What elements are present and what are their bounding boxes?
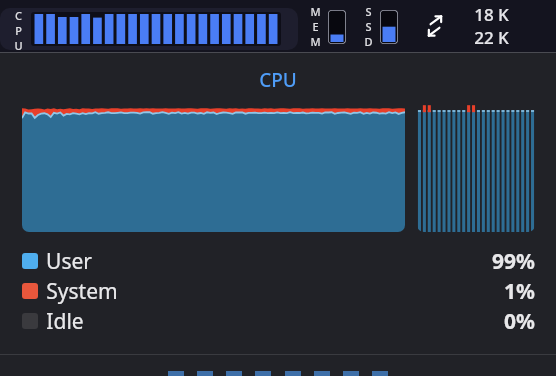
staticText: M — [310, 4, 321, 19]
staticText: 18 K — [474, 3, 509, 26]
button[interactable]: Idle — [0, 306, 556, 336]
staticText: P — [15, 23, 22, 38]
button[interactable]: M — [310, 4, 346, 49]
staticText: 22 K — [474, 26, 509, 49]
staticText: CPU — [259, 67, 297, 93]
button[interactable] — [22, 101, 405, 232]
staticText: D — [364, 34, 373, 49]
button[interactable] — [417, 101, 535, 232]
staticText: User — [46, 247, 92, 276]
button[interactable]: User — [0, 246, 556, 276]
staticText: S — [365, 19, 372, 34]
staticText: Idle — [46, 307, 84, 336]
staticText: U — [14, 38, 23, 50]
staticText: S — [365, 4, 372, 19]
button[interactable]: S — [364, 4, 398, 49]
button[interactable]: System — [0, 276, 556, 306]
staticText: 1% — [504, 277, 535, 306]
staticText: E — [312, 19, 319, 34]
button[interactable]: Network activity — [420, 11, 450, 41]
staticText: 99% — [492, 247, 535, 276]
button[interactable]: CPU — [259, 67, 297, 93]
staticText: 0% — [504, 307, 535, 336]
staticText: System — [46, 277, 118, 306]
staticText: M — [310, 34, 321, 49]
button[interactable]: C — [0, 8, 298, 50]
button[interactable]: 18 K — [474, 3, 509, 49]
staticText: C — [15, 8, 22, 23]
